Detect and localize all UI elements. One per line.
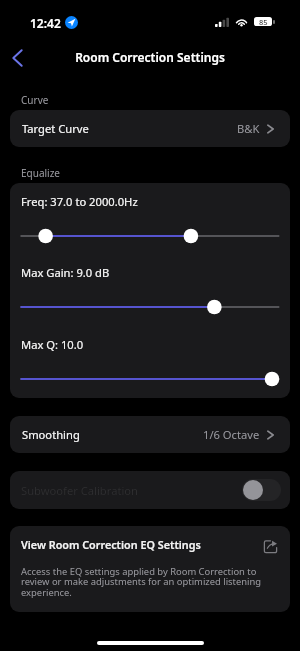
staticText: Max Gain: 9.0 dB xyxy=(21,265,110,280)
staticText: B&K xyxy=(237,121,260,136)
button[interactable]: Back xyxy=(5,46,29,70)
button[interactable]: Target Curve xyxy=(10,110,290,147)
button[interactable]: Subwoofer Calibration xyxy=(10,471,290,509)
staticText: View Room Correction EQ Settings xyxy=(21,537,201,552)
staticText: 12:42 xyxy=(30,15,61,31)
staticText: 85 xyxy=(259,17,268,26)
staticText: Smoothing xyxy=(22,427,80,442)
staticText: Target Curve xyxy=(22,121,89,136)
staticText: Subwoofer Calibration xyxy=(21,483,139,498)
button[interactable]: Smoothing xyxy=(10,416,290,453)
staticText: Access the EQ settings applied by Room C… xyxy=(21,565,265,599)
staticText: Max Q: 10.0 xyxy=(21,337,84,352)
button[interactable]: Subwoofer Calibration toggle xyxy=(242,479,281,501)
staticText: 1/6 Octave xyxy=(203,427,260,442)
staticText: Curve xyxy=(21,93,49,107)
button[interactable]: Open EQ settings xyxy=(264,540,277,553)
staticText: Freq: 37.0 to 2000.0Hz xyxy=(21,194,138,209)
staticText: Equalize xyxy=(21,166,60,180)
staticText: Room Correction Settings xyxy=(0,49,300,65)
